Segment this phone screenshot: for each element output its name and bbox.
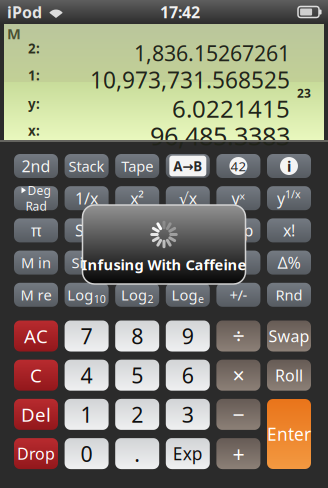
staticText: 1/x (285, 187, 301, 201)
button[interactable]: . (115, 438, 159, 469)
staticText: 1,836.15267261 (134, 39, 290, 67)
button[interactable]: AC (14, 320, 58, 351)
button[interactable]: yˣ (216, 186, 260, 210)
button[interactable]: Del (14, 399, 58, 430)
button[interactable]: x² (115, 186, 159, 210)
button[interactable]: M in (14, 251, 58, 275)
staticText: Sinh (72, 253, 102, 272)
staticText: % (232, 252, 245, 273)
staticText: Del (21, 402, 51, 427)
button[interactable]: + (216, 438, 260, 469)
button[interactable]: y (267, 186, 311, 210)
button[interactable]: Log (115, 283, 159, 307)
staticText: Cosh (120, 253, 154, 272)
staticText: yˣ (231, 188, 245, 209)
staticText: y (277, 188, 285, 209)
staticText: Drop (17, 443, 55, 464)
button[interactable]: ÷ (216, 320, 260, 351)
button[interactable]: C (14, 360, 58, 391)
staticText: Deg (27, 182, 50, 198)
staticText: 1 (81, 400, 93, 428)
staticText: 42 (230, 157, 246, 175)
button[interactable]: Enter (267, 399, 311, 469)
button[interactable]: Info (267, 154, 311, 178)
button[interactable]: Log (65, 283, 109, 307)
button[interactable]: − (216, 399, 260, 430)
button[interactable]: Stack (65, 154, 109, 178)
button[interactable]: 8 (115, 320, 159, 351)
button[interactable]: Hyp (216, 218, 260, 242)
staticText: √x (179, 188, 197, 209)
staticText: × (232, 361, 244, 389)
staticText: Tape (121, 156, 153, 176)
button[interactable]: 1 (65, 399, 109, 430)
button[interactable]: x! (267, 218, 311, 242)
button[interactable]: π (14, 218, 58, 242)
staticText: Stack (69, 156, 105, 176)
button[interactable]: A→B (166, 154, 210, 178)
button[interactable]: Log (166, 283, 210, 307)
button[interactable]: Deg (14, 186, 58, 210)
button[interactable]: Tan (166, 218, 210, 242)
button[interactable]: Sinh (65, 251, 109, 275)
staticText: Rad (25, 198, 46, 214)
staticText: 2nd (21, 155, 50, 177)
button[interactable]: % (216, 251, 260, 275)
staticText: 6 (182, 361, 194, 389)
button[interactable]: 6 (166, 360, 210, 391)
staticText: M (7, 24, 21, 43)
staticText: 6.0221415 (172, 92, 290, 124)
staticText: e (198, 292, 204, 306)
staticText: Roll (275, 365, 303, 386)
staticText: 4 (81, 361, 93, 389)
staticText: . (134, 439, 140, 468)
button[interactable]: M re (14, 283, 58, 307)
staticText: Hyp (223, 220, 253, 241)
button[interactable]: Roll (267, 360, 311, 391)
staticText: 0 (81, 439, 93, 468)
staticText: − (232, 400, 244, 428)
button[interactable]: Sin (65, 218, 109, 242)
staticText: y: (28, 95, 40, 113)
button[interactable]: Cos (115, 218, 159, 242)
button[interactable]: Swap (267, 320, 311, 351)
staticText: 17:42 (160, 1, 200, 23)
button[interactable]: 1/x (65, 186, 109, 210)
button[interactable]: 7 (65, 320, 109, 351)
staticText: Δ% (277, 252, 300, 273)
button[interactable]: 4 (65, 360, 109, 391)
staticText: 2: (28, 39, 40, 57)
staticText: Exp (173, 442, 203, 465)
button[interactable]: Rnd (267, 283, 311, 307)
button[interactable]: Cosh (115, 251, 159, 275)
staticText: Cos (123, 220, 151, 241)
button[interactable]: Tanh (166, 251, 210, 275)
staticText: 10 (94, 292, 106, 306)
staticText: C (30, 363, 42, 388)
button[interactable]: 2 (115, 399, 159, 430)
button[interactable]: Exp (166, 438, 210, 469)
staticText: A→B (173, 157, 202, 175)
button[interactable]: Δ% (267, 251, 311, 275)
staticText: 23 (297, 85, 311, 101)
staticText: Tan (174, 220, 201, 241)
staticText: +/- (229, 285, 247, 305)
staticText: 10,973,731.568525 (90, 65, 290, 95)
staticText: π (31, 220, 41, 241)
button[interactable]: 0 (65, 438, 109, 469)
staticText: iPod (7, 1, 42, 23)
button[interactable]: √x (166, 186, 210, 210)
button[interactable]: +/- (216, 283, 260, 307)
button[interactable]: 5 (115, 360, 159, 391)
button[interactable]: 3 (166, 399, 210, 430)
button[interactable]: 9 (166, 320, 210, 351)
button[interactable]: 42 (216, 154, 260, 178)
staticText: M re (20, 285, 51, 305)
button[interactable]: Drop (14, 438, 58, 469)
button[interactable]: × (216, 360, 260, 391)
staticText: Sin (75, 220, 98, 241)
button[interactable]: 2nd (14, 154, 58, 178)
staticText: Log (172, 285, 198, 305)
button[interactable]: Tape (115, 154, 159, 178)
staticText: AC (24, 324, 48, 348)
